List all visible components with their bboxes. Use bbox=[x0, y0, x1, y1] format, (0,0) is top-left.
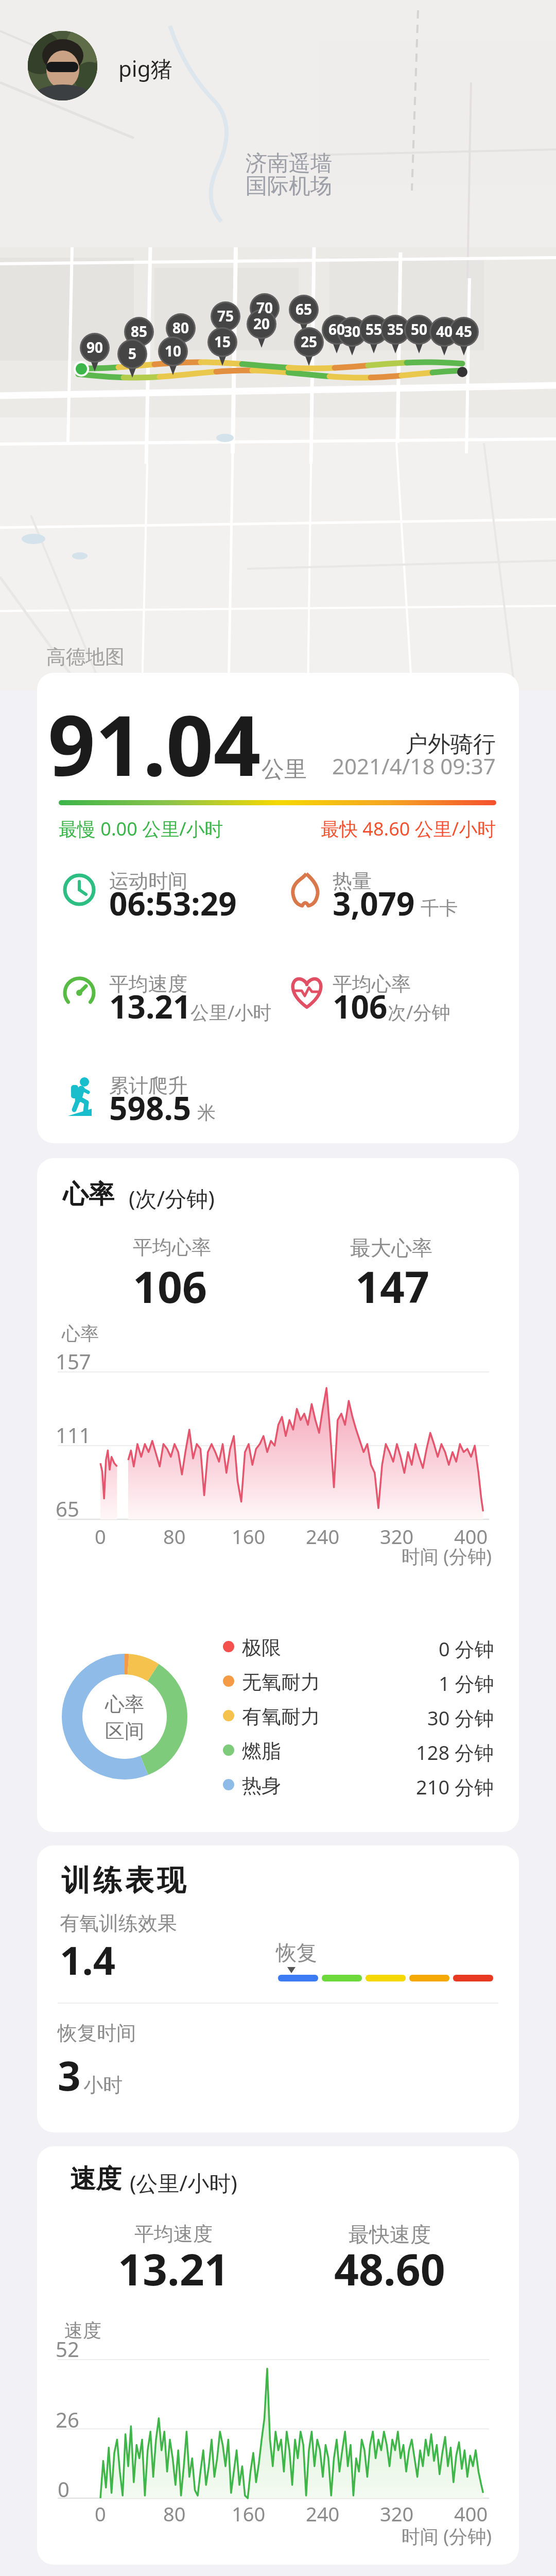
staticText: 1 分钟 bbox=[439, 1670, 494, 1697]
staticText: 160 bbox=[232, 2500, 266, 2527]
staticText: 速度 bbox=[64, 2319, 101, 2342]
staticText: 10 bbox=[165, 341, 182, 361]
staticText: 济南遥墙 bbox=[246, 150, 332, 177]
staticText: 80 bbox=[163, 1523, 186, 1550]
staticText: 训练表现 bbox=[60, 1862, 187, 1899]
staticText: 40 bbox=[436, 321, 453, 341]
staticText: 55 bbox=[366, 319, 383, 339]
staticText: 90 bbox=[86, 337, 103, 357]
staticText: 有氧训练效果 bbox=[60, 1911, 177, 1936]
staticText: 160 bbox=[232, 1523, 266, 1550]
staticText: 户外骑行 bbox=[405, 730, 496, 758]
staticText: (次/分钟) bbox=[129, 1183, 215, 1213]
staticText: 13.21 bbox=[118, 2239, 229, 2298]
staticText: 45 bbox=[456, 321, 473, 341]
staticText: 80 bbox=[172, 318, 189, 337]
staticText: 时间 (分钟) bbox=[402, 1544, 492, 1569]
staticText: pig猪 bbox=[118, 54, 172, 83]
staticText: 240 bbox=[306, 2500, 340, 2527]
staticText: 累计爬升 bbox=[109, 1073, 187, 1098]
button[interactable] bbox=[37, 1845, 519, 2132]
staticText: 106 bbox=[133, 1257, 207, 1315]
staticText: 65 bbox=[56, 1495, 79, 1522]
staticText: 无氧耐力 bbox=[242, 1670, 320, 1694]
staticText: 52 bbox=[56, 2335, 79, 2363]
staticText: 极限 bbox=[242, 1635, 281, 1660]
staticText: 热身 bbox=[242, 1773, 281, 1798]
staticText: 13.21 bbox=[109, 985, 192, 1028]
staticText: 0 bbox=[58, 2475, 69, 2503]
staticText: 公里 bbox=[262, 755, 307, 784]
staticText: 48.60 bbox=[334, 2239, 445, 2298]
staticText: 心率 bbox=[105, 1692, 144, 1717]
staticText: 147 bbox=[355, 1257, 430, 1315]
staticText: 0 分钟 bbox=[439, 1635, 494, 1662]
staticText: 平均心率 bbox=[133, 1235, 211, 1260]
staticText: 热量 bbox=[333, 869, 372, 893]
staticText: 26 bbox=[56, 2405, 79, 2433]
staticText: 恢复 bbox=[276, 1940, 317, 1965]
staticText: 25 bbox=[301, 332, 318, 351]
staticText: 运动时间 bbox=[109, 869, 187, 893]
staticText: 区间 bbox=[105, 1719, 144, 1743]
staticText: 35 bbox=[387, 319, 404, 339]
button[interactable] bbox=[28, 31, 97, 100]
staticText: 千卡 bbox=[421, 896, 458, 920]
staticText: 85 bbox=[131, 321, 148, 341]
staticText: 598.5 bbox=[109, 1086, 192, 1129]
staticText: 80 bbox=[163, 2500, 186, 2527]
staticText: 70 bbox=[256, 298, 273, 317]
staticText: 157 bbox=[56, 1347, 91, 1375]
staticText: 次/分钟 bbox=[388, 999, 450, 1025]
staticText: 91.04 bbox=[48, 687, 261, 800]
staticText: 燃脂 bbox=[242, 1739, 281, 1764]
staticText: 小时 bbox=[83, 2073, 123, 2097]
staticText: 国际机场 bbox=[246, 173, 332, 200]
staticText: 320 bbox=[380, 1523, 414, 1550]
staticText: 0 bbox=[95, 2500, 106, 2527]
staticText: 06:53:29 bbox=[109, 882, 237, 925]
staticText: 速度 bbox=[70, 2163, 121, 2195]
staticText: 106 bbox=[333, 985, 388, 1028]
staticText: 最快速度 bbox=[349, 2222, 431, 2247]
staticText: 平均速度 bbox=[134, 2222, 213, 2246]
staticText: 5 bbox=[128, 344, 137, 363]
staticText: 公里/小时 bbox=[190, 999, 272, 1025]
staticText: 2021/4/18 09:37 bbox=[332, 751, 496, 781]
staticText: 平均速度 bbox=[109, 972, 187, 996]
staticText: 20 bbox=[253, 314, 270, 333]
staticText: 3,079 bbox=[333, 882, 415, 925]
staticText: 240 bbox=[306, 1523, 340, 1550]
staticText: 320 bbox=[380, 2500, 414, 2527]
staticText: 111 bbox=[56, 1421, 91, 1449]
staticText: 最快 48.60 公里/小时 bbox=[321, 816, 496, 841]
staticText: 最大心率 bbox=[350, 1235, 432, 1261]
staticText: 时间 (分钟) bbox=[402, 2523, 492, 2549]
staticText: 30 bbox=[344, 321, 361, 341]
button[interactable] bbox=[37, 2146, 519, 2565]
staticText: 高德地图 bbox=[46, 645, 125, 669]
staticText: 米 bbox=[197, 1101, 216, 1124]
button[interactable] bbox=[37, 673, 519, 1143]
staticText: 最慢 0.00 公里/小时 bbox=[59, 816, 223, 841]
staticText: 恢复时间 bbox=[58, 2021, 136, 2045]
staticText: 15 bbox=[214, 332, 231, 351]
staticText: 0 bbox=[95, 1523, 106, 1550]
staticText: 75 bbox=[217, 306, 234, 326]
button[interactable] bbox=[37, 1158, 519, 1832]
staticText: (公里/小时) bbox=[130, 2168, 237, 2197]
staticText: 50 bbox=[411, 319, 428, 339]
staticText: 128 分钟 bbox=[416, 1739, 494, 1766]
staticText: 平均心率 bbox=[333, 972, 411, 996]
staticText: 210 分钟 bbox=[416, 1773, 494, 1800]
staticText: 心率 bbox=[63, 1178, 114, 1211]
staticText: 30 分钟 bbox=[427, 1704, 494, 1731]
staticText: 60 bbox=[328, 319, 345, 339]
staticText: 心率 bbox=[62, 1322, 99, 1345]
staticText: 400 bbox=[454, 1523, 488, 1550]
staticText: 400 bbox=[454, 2500, 488, 2527]
staticText: 3 bbox=[58, 2048, 81, 2103]
staticText: 1.4 bbox=[60, 1933, 116, 1987]
staticText: 65 bbox=[296, 299, 312, 319]
staticText: 有氧耐力 bbox=[242, 1704, 320, 1729]
